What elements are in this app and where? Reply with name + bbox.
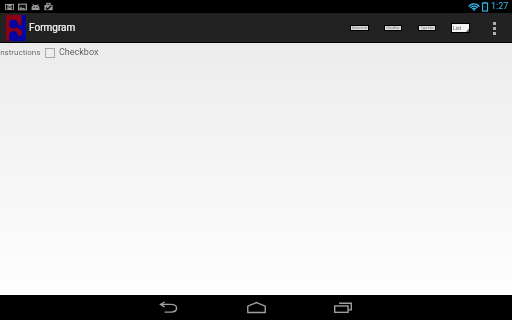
button[interactable]: Back	[135, 295, 203, 320]
button[interactable]	[45, 48, 55, 58]
staticText: List	[453, 25, 462, 31]
staticText: Type here	[421, 26, 434, 30]
staticText: CheckBox	[386, 26, 400, 30]
staticText: Formgram	[29, 22, 76, 34]
button[interactable]: Recent apps	[309, 295, 377, 320]
button[interactable]: Type here	[419, 26, 435, 30]
button[interactable]: CheckBox	[385, 26, 401, 30]
button[interactable]: More options	[490, 16, 498, 40]
staticText: Instructions	[0, 48, 41, 57]
staticText: 1:27	[491, 1, 509, 12]
button[interactable]: Button here	[351, 26, 368, 30]
button[interactable]: List	[452, 24, 469, 32]
staticText: Checkbox	[59, 47, 99, 58]
staticText: Button here	[352, 26, 368, 30]
button[interactable]: Home	[222, 295, 290, 320]
